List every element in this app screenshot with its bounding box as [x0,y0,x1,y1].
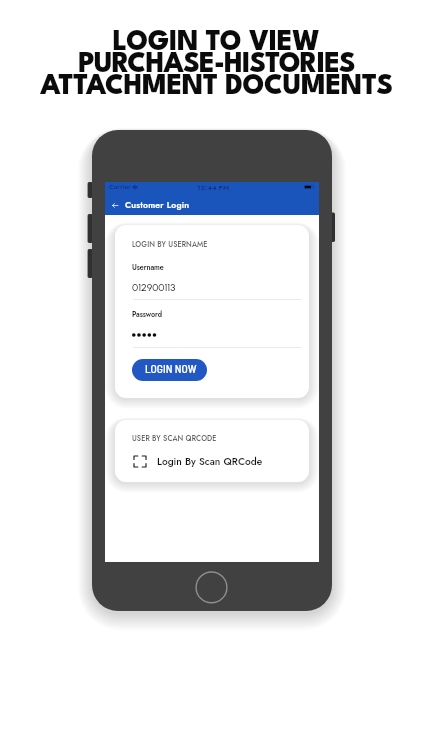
button[interactable]: LOGIN NOW [132,359,207,381]
staticText: LOGIN NOW [145,361,197,375]
staticText: Username [132,262,164,272]
staticText: 012900113 [132,281,176,293]
staticText: LOGIN TO VIEW [112,29,320,56]
staticText: USER BY SCAN QRCODE [132,433,217,444]
staticText: 12:44 PM [197,182,230,192]
button[interactable]: Back [105,196,124,215]
staticText: ATTACHMENT DOCUMENTS [40,73,393,100]
staticText: LOGIN BY USERNAME [132,239,208,250]
staticText: Customer Login [125,199,190,211]
staticText: Login By Scan QRCode [157,454,263,469]
button[interactable]: Login By Scan QRCode [115,447,309,475]
staticText: PURCHASE-HISTORIES [78,51,355,78]
staticText: Password [132,309,162,319]
staticText: Carrier [109,182,131,192]
